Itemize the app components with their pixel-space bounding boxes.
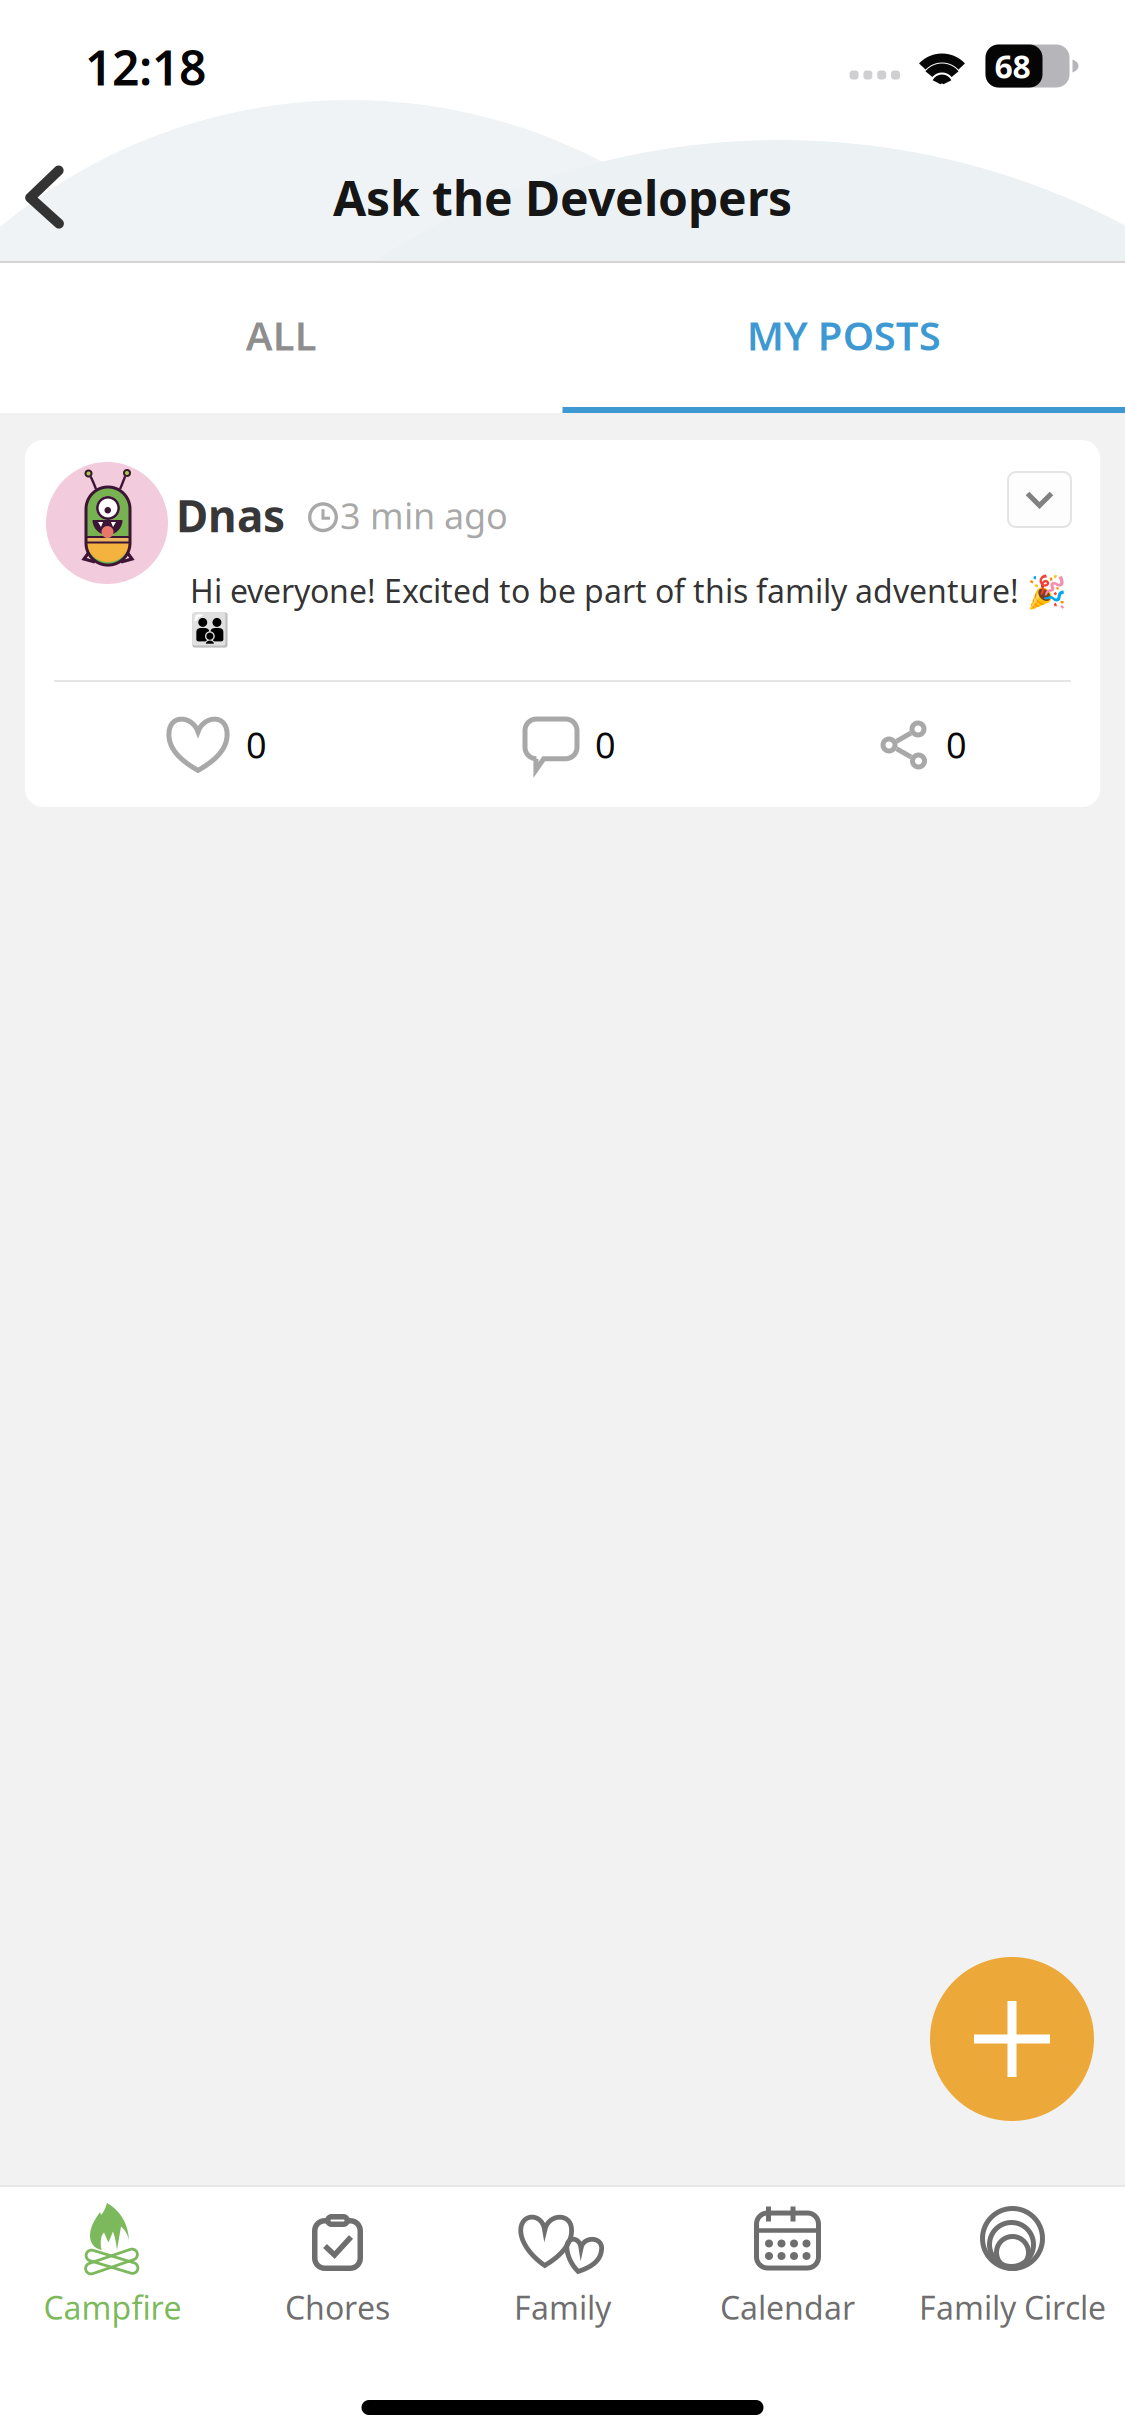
staticText: 0 [946,721,967,768]
staticText: MY POSTS [747,308,941,361]
button[interactable]: Post options [1007,471,1072,528]
staticText: 68 [994,45,1030,87]
staticText: Hi everyone! Excited to be part of this … [190,569,1067,648]
staticText: Family Circle [919,2286,1106,2328]
button[interactable]: New post [930,1957,1094,2121]
staticText: 3 min ago [340,491,508,539]
staticText: 0 [246,721,267,768]
button[interactable]: MY POSTS [562,263,1125,413]
button[interactable]: Campfire [0,2185,225,2340]
staticText: Ask the Developers [333,166,792,229]
staticText: Family [514,2286,611,2328]
staticText: 0 [595,721,616,768]
button[interactable]: Comment [394,682,747,807]
button[interactable]: Calendar [675,2185,900,2340]
button[interactable]: Family Circle [900,2185,1125,2340]
staticText: 12:18 [85,35,206,99]
button[interactable]: Family [450,2185,675,2340]
button[interactable]: Like [41,682,394,807]
button[interactable]: ALL [0,263,562,413]
staticText: Chores [285,2286,390,2328]
staticText: ALL [246,308,317,361]
staticText: Dnas [176,486,285,544]
button[interactable]: Share [747,682,1100,807]
button[interactable]: Chores [225,2185,450,2340]
staticText: Campfire [43,2286,181,2328]
button[interactable]: Back [0,132,100,263]
staticText: Calendar [720,2286,855,2328]
